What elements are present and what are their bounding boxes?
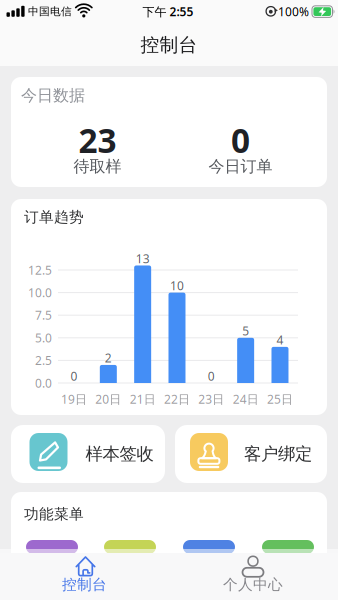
staticText: 0	[208, 368, 215, 384]
staticText: 7.5	[35, 307, 52, 323]
staticText: 12.5	[28, 262, 52, 278]
staticText: 样本签收	[85, 443, 153, 465]
button[interactable]: 控制台	[24, 549, 144, 600]
staticText: 0	[70, 368, 77, 384]
staticText: 4	[276, 332, 283, 348]
staticText: 2	[105, 350, 112, 366]
staticText: 下午 2:55	[142, 3, 193, 19]
staticText: 客户绑定	[244, 443, 312, 465]
staticText: 0	[231, 118, 250, 162]
staticText: 25日	[267, 391, 293, 407]
staticText: 今日数据	[21, 86, 85, 105]
staticText: 10.0	[28, 285, 52, 300]
staticText: 100%	[278, 3, 309, 19]
staticText: 控制台	[140, 33, 197, 56]
staticText: 24日	[233, 391, 259, 407]
staticText: 10	[170, 278, 184, 293]
button[interactable]: 样本签收	[11, 425, 165, 483]
staticText: 20日	[95, 391, 121, 407]
staticText: 5.0	[35, 330, 52, 346]
button[interactable]: 客户绑定	[175, 425, 327, 483]
staticText: 23日	[198, 391, 224, 407]
staticText: 22日	[164, 391, 190, 407]
staticText: 13	[136, 250, 150, 266]
staticText: 23	[78, 118, 116, 162]
staticText: 19日	[61, 391, 87, 407]
staticText: 订单趋势	[24, 208, 84, 226]
staticText: 个人中心	[223, 575, 283, 593]
staticText: 待取样	[73, 157, 121, 176]
button[interactable]: 个人中心	[193, 549, 313, 600]
staticText: 5	[242, 323, 249, 339]
staticText: 控制台	[62, 575, 107, 593]
staticText: 0.0	[35, 375, 52, 391]
staticText: 中国电信	[28, 5, 72, 18]
staticText: 今日订单	[208, 157, 272, 176]
staticText: 21日	[130, 391, 156, 407]
staticText: 功能菜单	[24, 505, 84, 523]
staticText: 2.5	[35, 352, 52, 368]
